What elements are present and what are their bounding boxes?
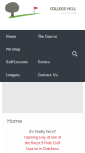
button[interactable]: Pro Shop — [6, 43, 38, 56]
button[interactable]: The Course — [38, 30, 85, 43]
button[interactable]: Events — [38, 56, 85, 68]
staticText: Course in Dutchess — [26, 146, 59, 151]
staticText: Events — [38, 60, 50, 64]
staticText: GOLF COURSE — [61, 11, 76, 14]
staticText: the finest 9 Hole Golf — [25, 140, 60, 145]
button[interactable]: Search — [72, 51, 78, 57]
staticText: The Course — [38, 34, 57, 39]
staticText: Contact Us — [38, 72, 58, 77]
staticText: Home — [6, 34, 16, 39]
button[interactable]: Home — [6, 30, 38, 43]
button[interactable]: Golf Lessons — [6, 56, 38, 68]
button[interactable]: Contact Us — [38, 68, 85, 81]
staticText: Leagues — [6, 72, 20, 77]
staticText: It's finally here!! — [29, 129, 56, 134]
button[interactable] — [38, 43, 85, 56]
staticText: Opening Day at one of — [24, 134, 61, 140]
button[interactable]: Leagues — [6, 68, 38, 81]
staticText: Golf Lessons — [6, 60, 28, 64]
staticText: Home — [7, 117, 22, 125]
staticText: Pro Shop — [6, 47, 20, 51]
staticText: COLLEGE HILL — [50, 6, 76, 11]
